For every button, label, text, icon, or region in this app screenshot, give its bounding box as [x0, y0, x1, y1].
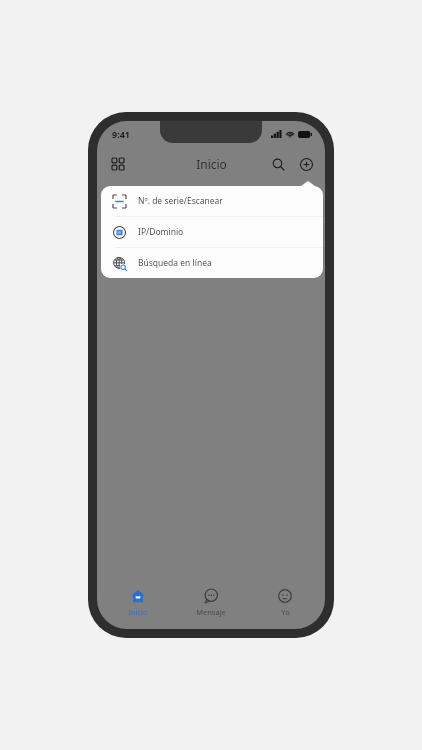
button[interactable]: Search	[264, 150, 292, 178]
staticText: Inicio	[128, 607, 148, 617]
button[interactable]: Mensaje	[178, 581, 244, 623]
button[interactable]: IP/Dominio	[101, 217, 323, 247]
button[interactable]: Nº. de serie/Escanear	[101, 186, 323, 216]
button[interactable]: Menu	[103, 149, 133, 179]
button[interactable]: Búsqueda en línea	[101, 248, 323, 278]
button[interactable]: Yo	[252, 581, 318, 623]
button[interactable]: Inicio	[105, 581, 171, 623]
staticText: Búsqueda en línea	[138, 257, 212, 269]
staticText: Yo	[281, 607, 290, 617]
staticText: Nº. de serie/Escanear	[138, 195, 223, 207]
button[interactable]: Add	[292, 150, 320, 178]
staticText: IP/Dominio	[138, 226, 184, 238]
staticText: 9:41	[112, 128, 130, 140]
staticText: Mensaje	[196, 607, 226, 617]
staticText: Inicio	[196, 156, 227, 172]
